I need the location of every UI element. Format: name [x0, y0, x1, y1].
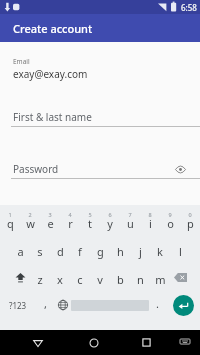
button[interactable]: Home [66, 330, 122, 355]
staticText: 2 [28, 211, 32, 218]
staticText: h [117, 244, 124, 259]
button[interactable]: Hide keyboard [170, 330, 200, 355]
staticText: u [127, 216, 134, 231]
staticText: 1 [8, 211, 12, 218]
staticText: d [57, 244, 64, 259]
button[interactable]: z [30, 265, 50, 289]
button[interactable]: Recent apps [122, 330, 170, 355]
staticText: 5 [88, 211, 92, 218]
staticText: b [117, 272, 124, 287]
staticText: Email [13, 57, 30, 66]
staticText: Create account [13, 21, 93, 36]
staticText: q [7, 216, 14, 231]
button[interactable]: 3 [40, 209, 60, 233]
button[interactable]: g [90, 237, 110, 261]
staticText: First & last name [13, 110, 92, 124]
button[interactable]: 8 [140, 209, 160, 233]
button[interactable]: 7 [120, 209, 140, 233]
button[interactable]: j [130, 237, 150, 261]
button[interactable]: c [70, 265, 90, 289]
button[interactable]: 4 [60, 209, 80, 233]
staticText: exay@exay.com [13, 67, 88, 81]
staticText: p [187, 216, 194, 231]
button[interactable]: h [110, 237, 130, 261]
staticText: Password [13, 162, 59, 176]
button[interactable]: Create account [0, 14, 200, 42]
staticText: 9 [168, 211, 172, 218]
staticText: i [149, 216, 152, 231]
button[interactable]: k [150, 237, 170, 261]
staticText: w [26, 216, 35, 231]
staticText: 3 [48, 211, 52, 218]
staticText: . [156, 296, 159, 311]
button[interactable]: Backspace [170, 265, 190, 289]
button[interactable]: Password [0, 161, 200, 183]
staticText: t [88, 216, 92, 231]
staticText: m [155, 272, 166, 287]
button[interactable]: b [110, 265, 130, 289]
button[interactable]: n [130, 265, 150, 289]
button[interactable]: 0 [180, 209, 200, 233]
button[interactable]: 6 [100, 209, 120, 233]
button[interactable]: . [149, 293, 166, 317]
staticText: x [57, 272, 63, 287]
staticText: l [179, 244, 182, 259]
button[interactable]: 2 [20, 209, 40, 233]
button[interactable]: Space [71, 293, 149, 317]
staticText: a [17, 244, 24, 259]
staticText: j [139, 244, 142, 259]
staticText: g [97, 244, 104, 259]
button[interactable]: ?123 [0, 293, 36, 317]
button[interactable]: Change language [54, 293, 71, 317]
button[interactable]: Enter [166, 293, 200, 317]
button[interactable]: Back [10, 330, 66, 355]
button[interactable]: a [10, 237, 30, 261]
staticText: ?123 [9, 300, 27, 311]
staticText: 6:58 [181, 2, 197, 13]
staticText: z [37, 272, 43, 287]
staticText: o [167, 216, 174, 231]
button[interactable]: 9 [160, 209, 180, 233]
button[interactable]: 5 [80, 209, 100, 233]
button[interactable]: l [170, 237, 190, 261]
button[interactable]: d [50, 237, 70, 261]
staticText: 0 [188, 211, 192, 218]
staticText: 4 [68, 211, 72, 218]
button[interactable]: First & last name [0, 109, 200, 131]
button[interactable]: x [50, 265, 70, 289]
button[interactable]: Show password [173, 162, 187, 176]
button[interactable]: f [70, 237, 90, 261]
staticText: v [97, 272, 103, 287]
staticText: y [107, 216, 113, 231]
staticText: c [77, 272, 83, 287]
staticText: r [68, 216, 73, 231]
button[interactable]: m [150, 265, 170, 289]
staticText: , [44, 296, 47, 311]
button[interactable]: s [30, 237, 50, 261]
staticText: 8 [148, 211, 152, 218]
button[interactable]: Shift [10, 265, 30, 289]
button[interactable]: v [90, 265, 110, 289]
button[interactable]: , [36, 293, 54, 317]
staticText: 7 [128, 211, 132, 218]
staticText: 6 [108, 211, 112, 218]
staticText: n [137, 272, 144, 287]
staticText: f [78, 244, 82, 259]
staticText: e [47, 216, 54, 231]
staticText: s [37, 244, 43, 259]
button[interactable]: 1 [0, 209, 20, 233]
staticText: k [157, 244, 163, 259]
